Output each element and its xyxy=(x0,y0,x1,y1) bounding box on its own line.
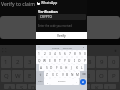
staticText: ?123 xyxy=(38,80,43,83)
button[interactable]: Enter xyxy=(80,79,86,85)
button[interactable]: T xyxy=(57,57,62,64)
staticText: 0 xyxy=(84,52,86,56)
button[interactable]: 4 xyxy=(52,50,57,57)
button[interactable]: H xyxy=(64,64,69,71)
staticText: Q xyxy=(4,72,9,80)
button[interactable]: E xyxy=(47,57,52,64)
staticText: . xyxy=(76,80,77,84)
button[interactable]: D xyxy=(49,64,54,71)
button[interactable]: 7 xyxy=(67,50,72,57)
staticText: • xyxy=(83,46,85,50)
button[interactable]: X xyxy=(50,71,55,78)
staticText: O xyxy=(78,59,81,63)
button[interactable]: Z xyxy=(44,71,50,78)
button[interactable]: P xyxy=(82,57,87,64)
staticText: T xyxy=(59,59,61,63)
button[interactable]: 0 xyxy=(82,50,87,57)
staticText: P xyxy=(112,72,116,80)
staticText: K xyxy=(95,84,99,89)
button[interactable]: L xyxy=(79,64,84,71)
button[interactable]: A xyxy=(39,64,44,71)
staticText: L xyxy=(81,66,83,70)
staticText: Y xyxy=(64,72,68,80)
staticText: S xyxy=(20,84,24,89)
staticText: E xyxy=(28,72,32,80)
button[interactable]: K xyxy=(74,64,79,71)
staticText: 4 xyxy=(54,52,56,56)
button[interactable]: J xyxy=(69,64,74,71)
staticText: ↵ xyxy=(82,80,85,84)
staticText: 2 xyxy=(16,58,20,66)
button[interactable]: , xyxy=(44,78,50,85)
staticText: E xyxy=(49,59,51,63)
button[interactable]: Shift xyxy=(36,71,44,78)
staticText: D xyxy=(50,66,53,70)
staticText: U xyxy=(75,72,80,80)
staticText: S xyxy=(46,66,48,70)
button[interactable]: F xyxy=(54,64,59,71)
staticText: Y xyxy=(64,59,66,63)
button[interactable]: W xyxy=(42,57,47,64)
button[interactable]: C xyxy=(55,71,60,78)
button[interactable]: I xyxy=(72,57,77,64)
staticText: A xyxy=(40,66,43,70)
staticText: W xyxy=(43,59,46,63)
staticText: J xyxy=(83,84,85,89)
button[interactable]: 3 xyxy=(47,50,52,57)
staticText: 6 xyxy=(64,58,68,66)
staticText: 9 xyxy=(100,58,104,66)
staticText: Verify xyxy=(57,34,66,38)
button[interactable]: G xyxy=(59,64,64,71)
staticText: K xyxy=(76,66,78,70)
staticText: 5 xyxy=(59,52,61,56)
staticText: G xyxy=(60,66,63,70)
button[interactable]: 1 xyxy=(36,50,42,57)
button[interactable]: Q xyxy=(36,57,42,64)
button[interactable]: V xyxy=(60,71,65,78)
staticText: J xyxy=(71,66,72,70)
button[interactable]: Y xyxy=(62,57,67,64)
staticText: N xyxy=(71,73,74,77)
staticText: 5 xyxy=(52,58,56,66)
button[interactable]: O xyxy=(77,57,82,64)
button[interactable]: 5 xyxy=(57,50,62,57)
button[interactable]: CRYPTO xyxy=(38,14,86,20)
staticText: ⇧ xyxy=(39,73,42,77)
staticText: 2 xyxy=(44,52,46,56)
staticText: crypto CRYPTO xyxy=(52,46,72,49)
staticText: Enter the code you received xyxy=(38,24,72,28)
button[interactable]: English xyxy=(50,78,73,85)
staticText: 0 xyxy=(112,58,116,66)
staticText: W xyxy=(15,72,21,80)
button[interactable]: M xyxy=(75,71,80,78)
button[interactable]: 8 xyxy=(72,50,77,57)
staticText: O xyxy=(99,72,104,80)
button[interactable]: 6 xyxy=(62,50,67,57)
staticText: G xyxy=(56,84,61,89)
button[interactable]: ?123 xyxy=(36,78,44,85)
staticText: 7 xyxy=(76,58,80,66)
button[interactable]: R xyxy=(52,57,57,64)
button[interactable]: Verify xyxy=(36,32,87,40)
staticText: B xyxy=(66,73,69,77)
staticText: ∷ xyxy=(38,46,40,49)
staticText: ⌫ xyxy=(82,73,86,76)
staticText: I xyxy=(74,59,76,63)
button[interactable]: U xyxy=(67,57,72,64)
staticText: I xyxy=(88,72,91,80)
staticText: X xyxy=(52,73,54,77)
button[interactable]: 2 xyxy=(42,50,47,57)
staticText: P xyxy=(84,59,86,63)
button[interactable]: B xyxy=(65,71,70,78)
button[interactable]: 9 xyxy=(77,50,82,57)
staticText: Verify to claim xyxy=(1,1,36,8)
button[interactable]: N xyxy=(70,71,75,78)
button[interactable]: S xyxy=(44,64,49,71)
staticText: H xyxy=(69,84,74,89)
staticText: A xyxy=(8,84,12,89)
button[interactable]: . xyxy=(73,78,79,85)
staticText: M xyxy=(76,73,79,77)
staticText: L xyxy=(108,84,112,89)
button[interactable]: Backspace xyxy=(80,71,87,78)
staticText: T xyxy=(52,72,56,80)
